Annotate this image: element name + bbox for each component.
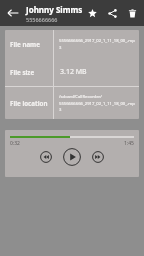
button[interactable]: Rewind [40, 151, 52, 163]
staticText: 3.12 MB [60, 67, 87, 77]
staticText: 1:45 [124, 140, 134, 147]
button[interactable]: Back [5, 5, 21, 21]
staticText: 0:32 [10, 140, 20, 147]
staticText: File location [10, 99, 48, 107]
button[interactable]: Share [105, 6, 119, 20]
button[interactable]: Seek bar [10, 136, 134, 138]
button[interactable]: Forward [92, 151, 104, 163]
button[interactable]: Favorite [85, 6, 99, 20]
staticText: File size [10, 68, 35, 76]
staticText: File name [10, 40, 40, 48]
button[interactable]: Play [63, 148, 81, 166]
button[interactable]: Delete [125, 6, 139, 20]
staticText: /sdcard/CallRecorder/5556666666_2917_02_… [59, 94, 136, 112]
staticText: 5556666666 [26, 16, 58, 23]
staticText: 5556666666_2917_02_1_11_18_00_.mp3 [59, 38, 136, 50]
staticText: Johnny Simms [26, 4, 83, 15]
